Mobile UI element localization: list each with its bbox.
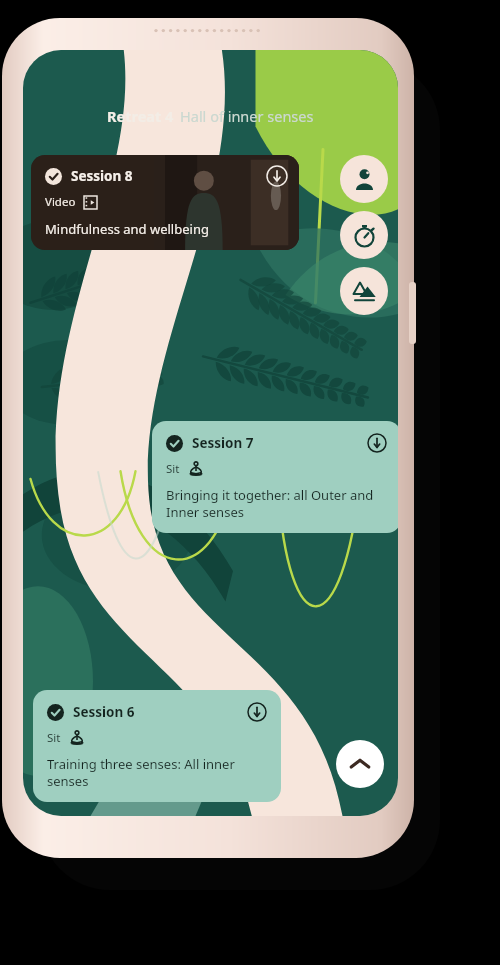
button[interactable]: Timer (340, 211, 388, 259)
staticText: Sit (47, 730, 61, 746)
button[interactable]: Scroll up (336, 740, 384, 788)
button[interactable]: Download session 8 (266, 165, 288, 187)
button[interactable]: Session 6 (33, 690, 281, 802)
staticText: Bringing it together: all Outer and Inne… (166, 486, 387, 521)
staticText: Sit (166, 461, 180, 477)
staticText: Session 7 (192, 434, 254, 452)
button[interactable]: Download Session 7 (367, 433, 387, 453)
button[interactable]: Session 7 (152, 421, 398, 533)
staticText: Training three senses: All inner senses (47, 755, 267, 790)
staticText: Video (45, 194, 76, 210)
staticText: Session 6 (73, 703, 135, 721)
staticText: Session 8 (71, 167, 133, 185)
staticText: Mindfulness and wellbeing (45, 220, 209, 238)
button[interactable]: Download Session 6 (247, 702, 267, 722)
button[interactable]: Profile (340, 155, 388, 203)
staticText: Retreat 4 (107, 106, 174, 126)
button[interactable]: Session 8 (31, 155, 299, 250)
staticText: Hall of inner senses (180, 106, 314, 126)
button[interactable]: Landscape (340, 267, 388, 315)
